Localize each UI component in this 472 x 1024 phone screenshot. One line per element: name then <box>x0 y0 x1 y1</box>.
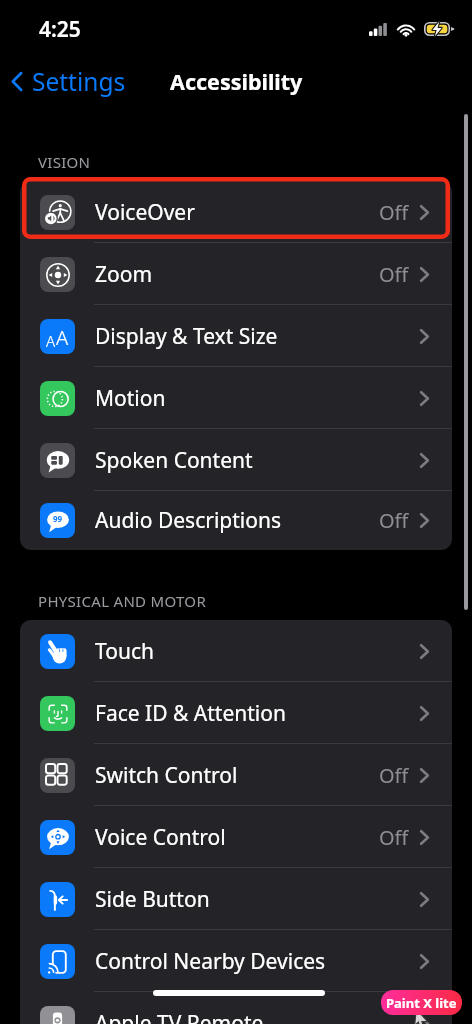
button[interactable]: Zoom <box>20 243 452 305</box>
button[interactable]: Face ID & Attention <box>20 682 452 744</box>
button[interactable]: Spoken Content <box>20 429 452 491</box>
staticText: Face ID & Attention <box>95 699 286 728</box>
button[interactable]: Voice Control <box>20 806 452 868</box>
button[interactable]: A <box>20 305 452 367</box>
button[interactable]: Side Button <box>20 868 452 930</box>
staticText: Apple TV Remote <box>95 1009 264 1024</box>
button[interactable]: Settings <box>0 59 134 104</box>
button[interactable]: Apple TV Remote <box>20 992 452 1024</box>
button[interactable]: Touch <box>20 620 452 682</box>
staticText: Control Nearby Devices <box>95 947 326 976</box>
staticText: Settings <box>32 65 126 98</box>
staticText: VoiceOver <box>95 198 195 227</box>
button[interactable]: Control Nearby Devices <box>20 930 452 992</box>
staticText: Voice Control <box>95 823 226 852</box>
button[interactable]: Switch Control <box>20 744 452 806</box>
staticText: Off <box>379 261 409 288</box>
button[interactable]: VoiceOver <box>20 181 452 243</box>
staticText: Motion <box>95 384 166 413</box>
staticText: VISION <box>38 152 91 172</box>
staticText: Paint X lite <box>386 994 457 1012</box>
staticText: Side Button <box>95 885 210 914</box>
staticText: Off <box>379 824 409 851</box>
staticText: Off <box>379 507 409 534</box>
staticText: 4:25 <box>39 15 81 44</box>
staticText: Touch <box>95 637 154 666</box>
staticText: Switch Control <box>95 761 238 790</box>
staticText: A <box>56 324 69 351</box>
staticText: 99 <box>53 513 63 524</box>
staticText: Accessibility <box>170 67 303 96</box>
staticText: Spoken Content <box>95 446 253 475</box>
staticText: Zoom <box>95 260 153 289</box>
button[interactable]: Motion <box>20 367 452 429</box>
staticText: PHYSICAL AND MOTOR <box>38 591 207 611</box>
staticText: Audio Descriptions <box>95 506 281 535</box>
staticText: A <box>46 331 56 351</box>
button[interactable]: 99 <box>20 491 452 550</box>
staticText: Display & Text Size <box>95 322 278 351</box>
staticText: Off <box>379 762 409 789</box>
staticText: Off <box>379 199 409 226</box>
